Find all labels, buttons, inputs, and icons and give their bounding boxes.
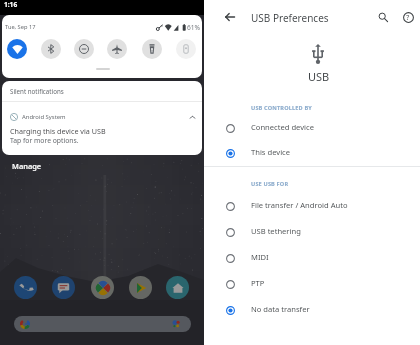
- staticText: Android System: [22, 113, 66, 121]
- staticText: Connected device: [251, 122, 314, 132]
- button[interactable]: App: [91, 276, 114, 299]
- button[interactable]: App: [166, 276, 189, 299]
- button[interactable]: Quick setting: [74, 39, 94, 59]
- button[interactable]: No data transfer: [204, 297, 420, 323]
- button[interactable]: Connected device: [204, 115, 420, 141]
- staticText: This device: [251, 147, 291, 157]
- button[interactable]: Silent notifications: [2, 81, 202, 101]
- staticText: USB CONTROLLED BY: [251, 104, 312, 112]
- button[interactable]: App: [14, 276, 37, 299]
- staticText: USE USB FOR: [251, 180, 289, 188]
- button[interactable]: Help: [396, 5, 420, 29]
- button[interactable]: Quick setting: [176, 39, 196, 59]
- staticText: Charging this device via USB: [10, 126, 106, 136]
- button[interactable]: MIDI: [204, 245, 420, 271]
- staticText: USB: [308, 69, 330, 84]
- staticText: USB Preferences: [251, 11, 329, 25]
- button[interactable]: USB tethering: [204, 219, 420, 245]
- button[interactable]: This device: [204, 140, 420, 166]
- staticText: USB tethering: [251, 226, 301, 236]
- button[interactable]: Quick setting: [41, 39, 61, 59]
- staticText: 1:16: [4, 0, 18, 9]
- staticText: ?: [406, 12, 410, 22]
- staticText: MIDI: [251, 252, 269, 262]
- button[interactable]: Search: [371, 5, 395, 29]
- staticText: 61%: [187, 23, 201, 32]
- button[interactable]: Quick setting: [142, 39, 162, 59]
- button[interactable]: Back: [218, 5, 242, 29]
- button[interactable]: Android System: [2, 102, 202, 155]
- button[interactable]: File transfer / Android Auto: [204, 193, 420, 219]
- button[interactable]: Search: [14, 316, 191, 332]
- button[interactable]: App: [52, 276, 75, 299]
- button[interactable]: App: [129, 276, 152, 299]
- staticText: Tue, Sep 17: [5, 23, 36, 31]
- button[interactable]: Manage: [12, 161, 42, 171]
- other: Collapse: [189, 114, 196, 121]
- button[interactable]: Quick setting: [107, 39, 127, 59]
- staticText: Silent notifications: [10, 87, 64, 95]
- staticText: Tap for more options.: [10, 136, 79, 145]
- staticText: PTP: [251, 278, 265, 288]
- button[interactable]: PTP: [204, 271, 420, 297]
- staticText: No data transfer: [251, 304, 310, 314]
- button[interactable]: Quick setting: [7, 39, 27, 59]
- staticText: File transfer / Android Auto: [251, 200, 348, 210]
